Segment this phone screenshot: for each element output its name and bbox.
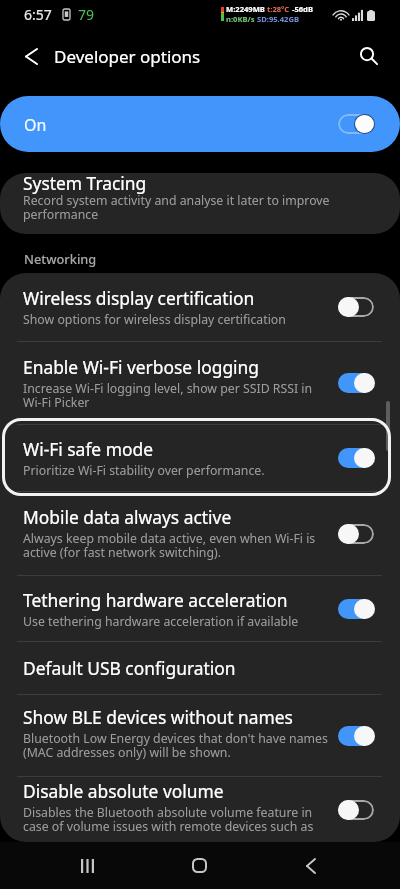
- staticText: Use tethering hardware acceleration if a…: [23, 613, 299, 630]
- button[interactable]: Tethering hardware acceleration: [0, 576, 400, 641]
- staticText: Show options for wireless display certif…: [23, 311, 286, 328]
- button[interactable]: Mobile data always active: [0, 492, 400, 575]
- staticText: Increase Wi-Fi logging level, show per S…: [23, 380, 313, 411]
- button[interactable]: Back: [281, 842, 341, 889]
- button[interactable]: Home: [169, 842, 229, 889]
- button[interactable]: Enable Wi-Fi verbose logging: [0, 342, 400, 424]
- staticText: t:28°C: [267, 4, 292, 14]
- staticText: Disables the Bluetooth absolute volume f…: [23, 804, 314, 835]
- staticText: Disable absolute volume: [23, 779, 224, 803]
- staticText: Show BLE devices without names: [23, 705, 293, 729]
- staticText: Bluetooth Low Energy devices that don't …: [23, 730, 328, 761]
- button[interactable]: On: [0, 96, 400, 152]
- staticText: 79: [78, 5, 95, 24]
- staticText: M:2249MB: [226, 4, 267, 14]
- staticText: Prioritize Wi-Fi stability over performa…: [23, 462, 265, 479]
- button[interactable]: System Tracing: [0, 173, 400, 234]
- staticText: Always keep mobile data active, even whe…: [23, 530, 316, 561]
- staticText: Wi-Fi safe mode: [23, 437, 153, 461]
- button[interactable]: Recent apps: [57, 842, 117, 889]
- staticText: Mobile data always active: [23, 505, 232, 529]
- staticText: On: [24, 114, 47, 136]
- button[interactable]: Navigate up: [11, 36, 51, 76]
- staticText: Developer options: [54, 45, 201, 68]
- staticText: n:0KB/s: [226, 14, 257, 24]
- button[interactable]: Default USB configuration: [0, 642, 400, 694]
- staticText: Networking: [24, 250, 97, 267]
- staticText: SD:95.42GB: [257, 14, 299, 24]
- button[interactable]: Disable absolute volume: [0, 777, 400, 842]
- staticText: Enable Wi-Fi verbose logging: [23, 355, 260, 379]
- staticText: Tethering hardware acceleration: [23, 588, 288, 612]
- button[interactable]: Show BLE devices without names: [0, 695, 400, 776]
- staticText: -56dB: [292, 4, 313, 14]
- button[interactable]: Wireless display certification: [0, 273, 400, 341]
- button[interactable]: Wi-Fi safe mode: [0, 425, 400, 491]
- staticText: Wireless display certification: [23, 286, 255, 310]
- staticText: System Tracing: [23, 173, 147, 195]
- button[interactable]: Search: [349, 36, 389, 76]
- staticText: Record system activity and analyse it la…: [23, 192, 330, 223]
- staticText: 6:57: [24, 5, 52, 24]
- staticText: Default USB configuration: [23, 656, 236, 680]
